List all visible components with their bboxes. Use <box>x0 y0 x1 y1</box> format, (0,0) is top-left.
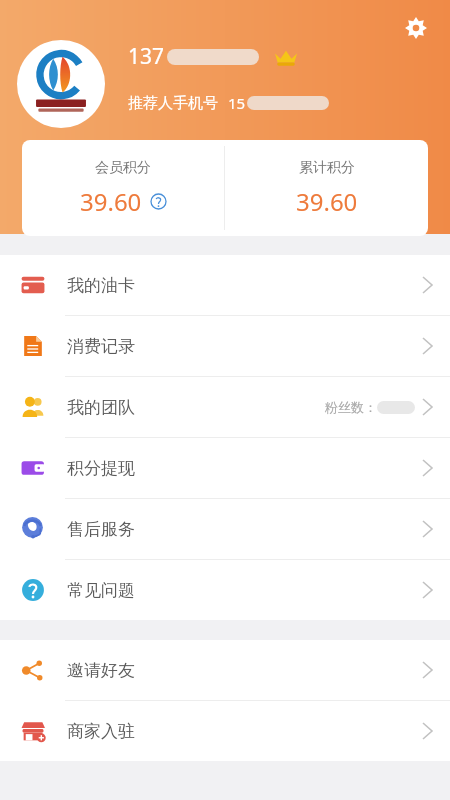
button[interactable]: 累计积分 <box>225 140 428 236</box>
staticText: 售后服务 <box>67 519 135 540</box>
staticText: 累计积分 <box>299 159 355 177</box>
staticText: 推荐人手机号 <box>128 94 218 113</box>
button[interactable]: 我的团队 <box>0 377 450 437</box>
staticText: 商家入驻 <box>67 721 135 742</box>
staticText: 39.60 <box>296 185 358 218</box>
staticText: 常见问题 <box>67 580 135 601</box>
button[interactable]: 消费记录 <box>0 316 450 376</box>
staticText: 积分提现 <box>67 458 135 479</box>
button[interactable]: 售后服务 <box>0 499 450 559</box>
staticText: 137 <box>128 42 165 71</box>
button[interactable]: 会员积分 <box>22 140 224 236</box>
staticText: 会员积分 <box>95 159 151 177</box>
staticText: 消费记录 <box>67 336 135 357</box>
button[interactable]: Settings <box>396 8 436 48</box>
staticText: 我的油卡 <box>67 275 135 296</box>
staticText: 39.60 <box>80 185 142 218</box>
button[interactable]: 邀请好友 <box>0 640 450 700</box>
button[interactable]: Profile logo <box>17 40 105 128</box>
staticText: 我的团队 <box>67 397 135 418</box>
staticText: 邀请好友 <box>67 660 135 681</box>
staticText: 粉丝数： <box>325 399 377 415</box>
staticText: 15 <box>228 93 246 113</box>
button[interactable]: 我的油卡 <box>0 255 450 315</box>
button[interactable]: 积分提现 <box>0 438 450 498</box>
button[interactable]: 商家入驻 <box>0 701 450 761</box>
button[interactable]: 常见问题 <box>0 560 450 620</box>
